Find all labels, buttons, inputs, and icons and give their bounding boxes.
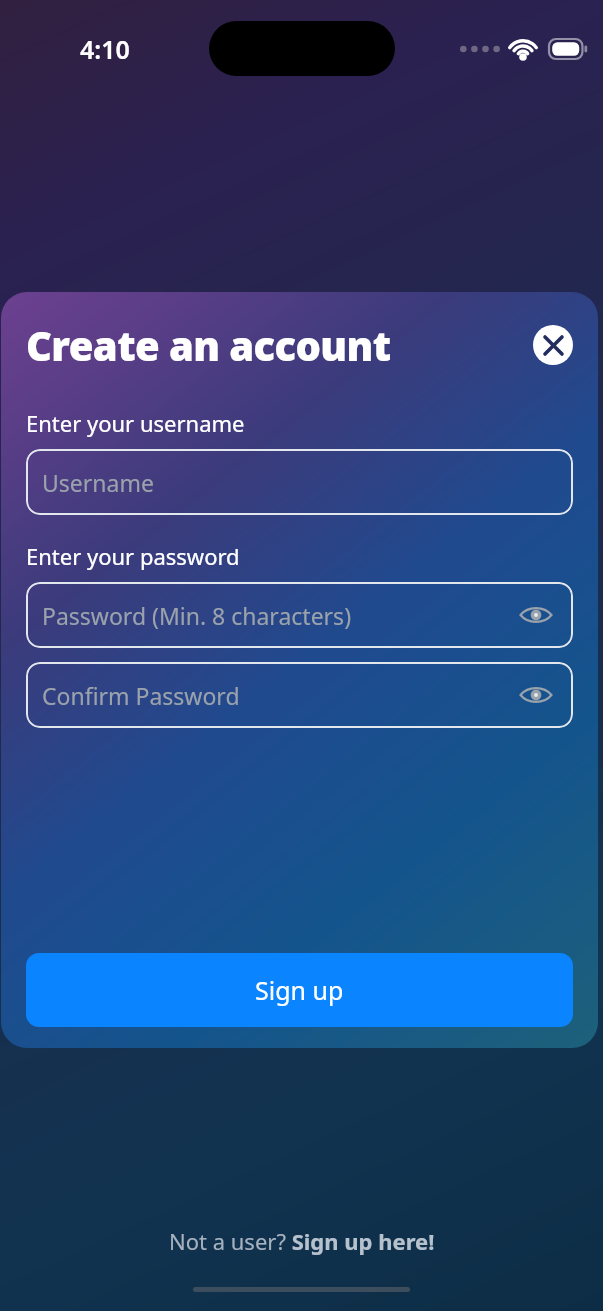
button[interactable]: Show password xyxy=(517,596,555,634)
staticText: Username xyxy=(42,467,555,498)
staticText: Confirm Password xyxy=(42,680,517,711)
staticText: 4:10 xyxy=(80,32,130,66)
staticText: Not a user? Sign up here! xyxy=(169,1226,435,1256)
staticText: Enter your username xyxy=(26,408,245,438)
staticText: Enter your password xyxy=(26,541,240,571)
button[interactable]: Password (Min. 8 characters) xyxy=(26,582,573,648)
button[interactable]: Sign up xyxy=(26,953,573,1027)
staticText: Create an account xyxy=(26,318,533,372)
staticText: Sign up xyxy=(255,973,344,1007)
staticText: Password (Min. 8 characters) xyxy=(42,600,517,631)
button[interactable]: Close xyxy=(533,325,573,365)
button[interactable]: Username xyxy=(26,449,573,515)
button[interactable]: Confirm Password xyxy=(26,662,573,728)
button[interactable]: Show password xyxy=(517,676,555,714)
button[interactable]: Not a user? Sign up here! xyxy=(157,1218,447,1264)
